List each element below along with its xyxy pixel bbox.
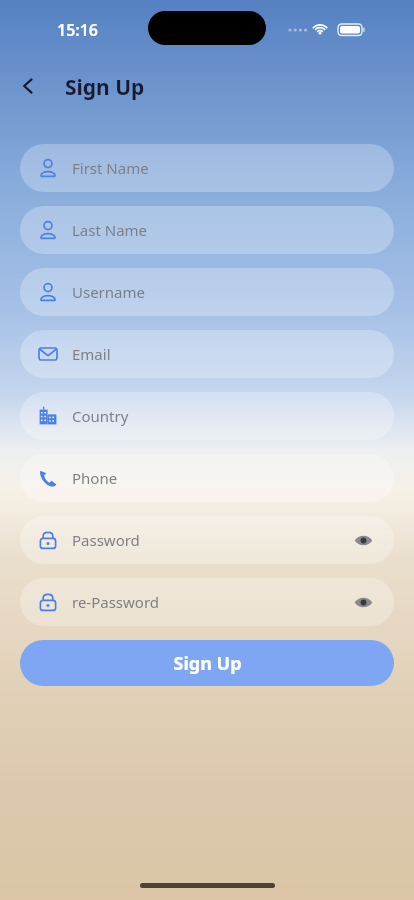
button[interactable]: Back bbox=[8, 66, 48, 106]
button[interactable]: Username bbox=[20, 268, 394, 316]
staticText: Email bbox=[72, 344, 376, 364]
button[interactable]: Last Name bbox=[20, 206, 394, 254]
staticText: re-Password bbox=[72, 592, 350, 612]
button[interactable]: Email bbox=[20, 330, 394, 378]
staticText: 15:16 bbox=[57, 19, 99, 41]
staticText: Country bbox=[72, 406, 376, 426]
button[interactable]: First Name bbox=[20, 144, 394, 192]
button[interactable]: re-Password bbox=[20, 578, 394, 626]
staticText: Phone bbox=[72, 468, 376, 488]
button[interactable]: Country bbox=[20, 392, 394, 440]
staticText: Sign Up bbox=[65, 73, 145, 102]
staticText: Sign Up bbox=[173, 651, 242, 676]
button[interactable]: Sign Up bbox=[20, 640, 394, 686]
button[interactable]: Phone bbox=[20, 454, 394, 502]
staticText: First Name bbox=[72, 158, 376, 178]
button[interactable]: Password bbox=[20, 516, 394, 564]
staticText: Last Name bbox=[72, 220, 376, 240]
staticText: Password bbox=[72, 530, 350, 550]
button[interactable]: Show password bbox=[350, 589, 376, 615]
button[interactable]: Show password bbox=[350, 527, 376, 553]
staticText: Username bbox=[72, 282, 376, 302]
